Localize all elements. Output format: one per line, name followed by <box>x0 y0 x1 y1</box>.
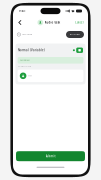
staticText: Stage 1 of 3 · 2 min <box>22 34 32 35</box>
staticText: Duration 2 sec - 5 min <box>18 65 31 67</box>
button[interactable]: Submit <box>16 151 85 161</box>
button[interactable]: Instructions <box>66 31 84 38</box>
button[interactable]: Play recording <box>20 72 26 79</box>
staticText: Submit <box>45 154 55 158</box>
staticText: Audio task <box>45 21 61 24</box>
staticText: Cancel <box>75 21 84 24</box>
staticText: Instructions <box>70 34 80 35</box>
staticText: 00:00 <box>28 75 32 77</box>
button[interactable]: Stop recording <box>76 48 83 53</box>
staticText: Say this text <box>20 59 30 61</box>
button[interactable]: Back <box>16 17 24 28</box>
button[interactable]: Cancel <box>74 17 85 28</box>
staticText: 9:41 <box>19 9 26 13</box>
staticText: Normal (Variable) <box>18 48 45 52</box>
